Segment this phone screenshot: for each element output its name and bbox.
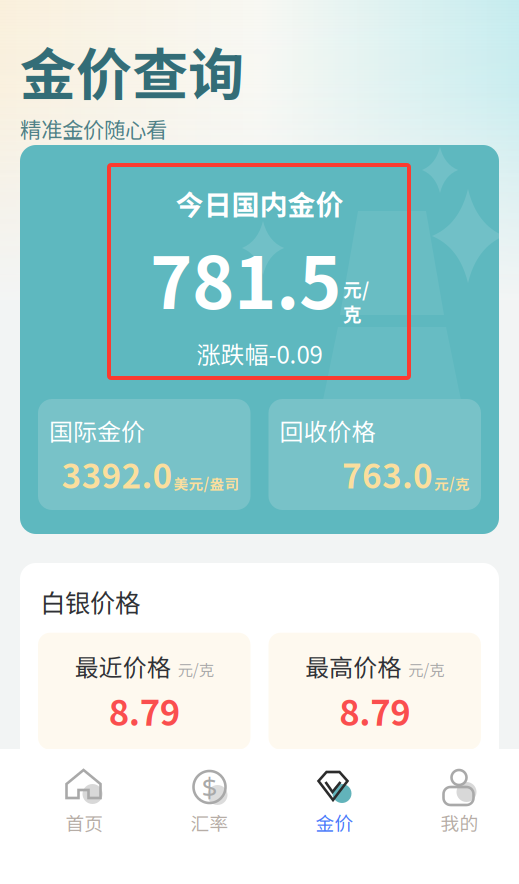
staticText: 元/ (343, 275, 369, 302)
staticText: 元/克 (434, 473, 470, 494)
staticText: 白银价格 (40, 583, 140, 620)
staticText: 781.5 (150, 225, 341, 330)
staticText: 汇率 (190, 809, 228, 836)
button[interactable]: 金价 (272, 749, 397, 884)
staticText: 8.79 (339, 685, 410, 736)
staticText: 763.0 (342, 450, 433, 498)
staticText: 美元/盎司 (173, 473, 239, 494)
staticText: 最近价格 (75, 649, 171, 683)
staticText: 3392.0 (61, 450, 172, 498)
staticText: 涨跌幅-0.09 (196, 336, 322, 371)
staticText: 金价查询 (20, 30, 244, 111)
staticText: 元/克 (178, 658, 214, 680)
staticText: 8.79 (109, 685, 180, 736)
staticText: 最高价格 (305, 649, 401, 683)
staticText: $ (201, 768, 217, 806)
staticText: 金价 (315, 809, 353, 836)
button[interactable]: 首页 (22, 749, 147, 884)
staticText: 元/克 (408, 658, 444, 680)
staticText: 克 (343, 300, 362, 327)
staticText: 回收价格 (279, 413, 375, 448)
staticText: 国际金价 (49, 413, 145, 448)
staticText: 今日国内金价 (175, 183, 343, 223)
button[interactable]: 我的 (397, 749, 519, 884)
staticText: 精准金价随心看 (20, 113, 167, 144)
staticText: 首页 (65, 809, 103, 836)
staticText: 我的 (440, 809, 478, 836)
button[interactable]: $ (147, 749, 272, 884)
